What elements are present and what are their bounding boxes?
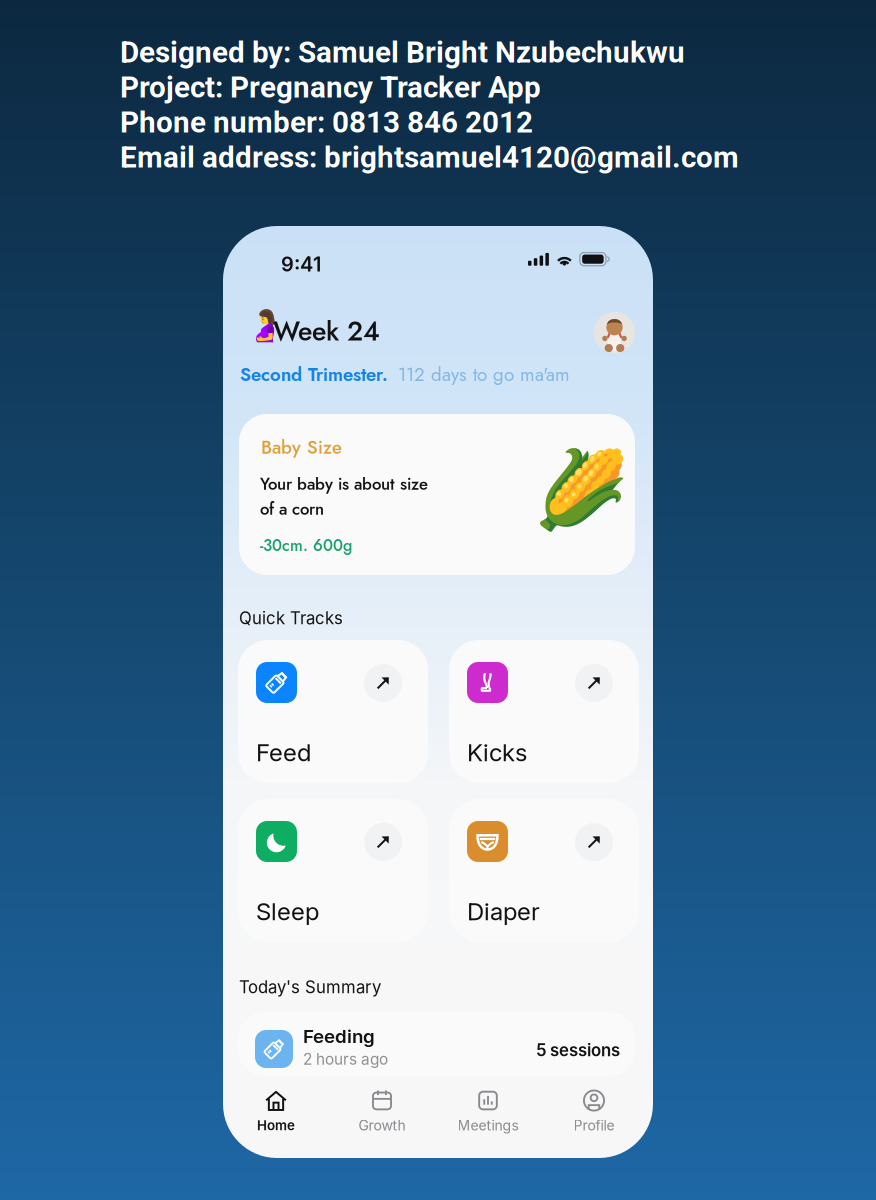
staticText: Today's Summary (239, 977, 381, 997)
button[interactable]: Growth (329, 1088, 435, 1135)
staticText: Profile (573, 1117, 614, 1134)
staticText: of a corn (260, 497, 324, 521)
button[interactable]: Kicks (449, 640, 639, 783)
staticText: Week 24 (273, 312, 380, 350)
staticText: Project: Pregnancy Tracker App (120, 70, 541, 105)
button[interactable]: Sleep (238, 799, 428, 942)
staticText: -30cm. 600g (260, 534, 352, 557)
staticText: Feed (256, 738, 311, 767)
staticText: 112 days to go ma'am (398, 361, 570, 388)
button[interactable]: Feed (238, 640, 428, 783)
staticText: 🤰 (246, 308, 284, 344)
staticText: Email address: brightsamuel4120@gmail.co… (120, 140, 739, 175)
staticText: Your baby is about size (260, 472, 428, 496)
button[interactable]: Profile photo (594, 312, 635, 353)
staticText: Quick Tracks (239, 608, 343, 628)
staticText: Diaper (467, 897, 540, 926)
staticText: Baby Size (261, 434, 342, 461)
staticText: Kicks (467, 738, 527, 767)
staticText: Home (257, 1117, 295, 1133)
staticText: Meetings (457, 1117, 518, 1134)
staticText: Second Trimester. (240, 361, 388, 388)
button[interactable]: Diaper (449, 799, 639, 942)
staticText: 9:41 (281, 252, 321, 276)
staticText: Growth (358, 1117, 405, 1134)
button[interactable]: Profile (541, 1088, 647, 1135)
button[interactable]: Meetings (435, 1088, 541, 1135)
button[interactable]: Home (223, 1088, 329, 1135)
button[interactable]: Feeding (238, 1012, 635, 1076)
staticText: 5 sessions (536, 1040, 620, 1060)
staticText: Sleep (256, 897, 319, 926)
staticText: Phone number: 0813 846 2012 (120, 105, 533, 140)
staticText: Designed by: Samuel Bright Nzubechukwu (120, 35, 685, 70)
staticText: Feeding (303, 1025, 375, 1048)
staticText: 🌽 (534, 445, 629, 534)
staticText: 2 hours ago (303, 1050, 388, 1069)
